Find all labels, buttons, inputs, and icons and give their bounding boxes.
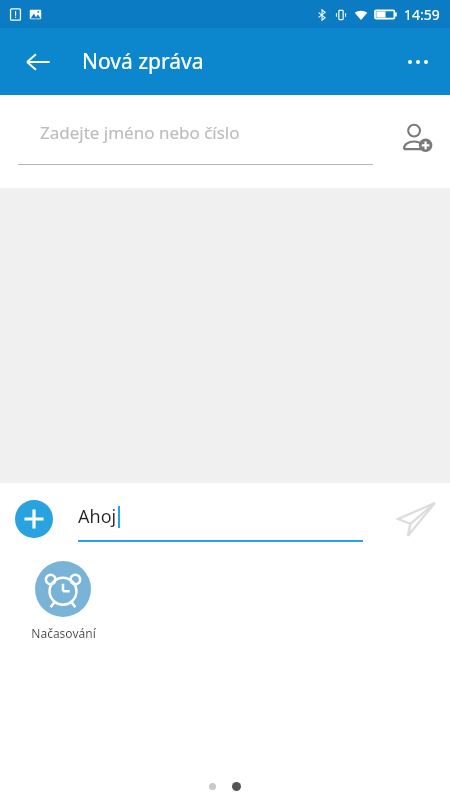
staticText: Načasování	[31, 625, 96, 641]
button[interactable]: Back	[14, 38, 62, 86]
button[interactable]: Send	[390, 493, 442, 545]
button[interactable]: Add contact	[390, 111, 442, 163]
button[interactable]: Ahoj	[78, 493, 368, 545]
button[interactable]: Add attachment	[10, 495, 58, 543]
button[interactable]: More options	[394, 38, 442, 86]
staticText: Zadejte jméno nebo číslo	[40, 121, 240, 144]
button[interactable]: Zadejte jméno nebo číslo	[18, 105, 373, 171]
staticText: 14:59	[404, 5, 440, 24]
staticText: Nová zpráva	[82, 47, 204, 76]
button[interactable]: Načasování	[20, 561, 106, 641]
staticText: Ahoj	[78, 504, 117, 529]
